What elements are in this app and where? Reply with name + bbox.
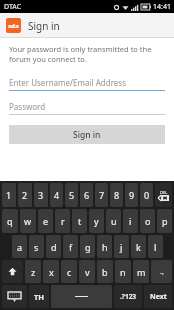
staticText: Password (9, 101, 46, 112)
button[interactable]: 3 (34, 183, 48, 207)
button[interactable]: t (72, 209, 87, 233)
button[interactable]: Password (9, 99, 165, 115)
staticText: 0 (144, 189, 150, 201)
button[interactable]: n (115, 260, 131, 283)
staticText: c (67, 266, 72, 278)
staticText: Enter Username/Email Address (9, 77, 126, 88)
button[interactable]: x (43, 260, 59, 283)
staticText: i (129, 215, 132, 227)
button[interactable]: Next (144, 285, 172, 308)
staticText: TH (34, 292, 45, 302)
staticText: 2 (22, 189, 28, 201)
staticText: a (17, 241, 23, 253)
button[interactable]: 2 (18, 183, 32, 207)
staticText: xda (8, 22, 19, 30)
button[interactable]: XDA logo (6, 18, 60, 33)
button[interactable]: .?123 (114, 285, 142, 308)
staticText: w (24, 215, 32, 227)
staticText: DEL (160, 190, 168, 195)
button[interactable]: Delete (155, 183, 172, 207)
button[interactable]: f (63, 235, 78, 258)
staticText: 4 (54, 189, 60, 201)
button[interactable]: 8 (110, 183, 123, 207)
staticText: 8 (114, 189, 120, 201)
button[interactable]: h (97, 235, 112, 258)
button[interactable]: Space (51, 285, 112, 308)
staticText: d (51, 241, 57, 253)
staticText: Next (150, 292, 167, 302)
button[interactable]: Hide keyboard (2, 285, 27, 308)
button[interactable]: c (61, 260, 77, 283)
staticText: p (162, 215, 168, 227)
staticText: 14:41 (153, 2, 171, 12)
staticText: h (102, 241, 108, 253)
button[interactable]: v (79, 260, 95, 283)
button[interactable]: w (20, 209, 36, 233)
staticText: k (136, 241, 141, 253)
staticText: o (145, 215, 151, 227)
button[interactable]: ., (151, 260, 172, 283)
staticText: ., (160, 267, 164, 277)
button[interactable]: Sign in (9, 125, 165, 144)
staticText: j (120, 241, 123, 253)
button[interactable]: l (148, 235, 163, 258)
button[interactable]: b (97, 260, 113, 283)
button[interactable]: Shift (2, 260, 23, 283)
staticText: z (31, 266, 36, 278)
button[interactable]: TH (29, 285, 49, 308)
button[interactable]: 6 (80, 183, 93, 207)
button[interactable]: 4 (50, 183, 63, 207)
staticText: b (102, 266, 108, 278)
staticText: 6 (84, 189, 90, 201)
button[interactable]: i (123, 209, 138, 233)
staticText: 5 (69, 189, 75, 201)
staticText: 7 (99, 189, 105, 201)
button[interactable]: o (140, 209, 155, 233)
staticText: v (85, 266, 90, 278)
button[interactable]: 0 (140, 183, 153, 207)
staticText: l (154, 241, 157, 253)
staticText: 3 (38, 189, 44, 201)
button[interactable]: 1 (2, 183, 16, 207)
staticText: q (7, 215, 13, 227)
staticText: DTAC (4, 2, 22, 12)
button[interactable]: g (80, 235, 95, 258)
staticText: Sign in (73, 129, 101, 141)
button[interactable]: r (55, 209, 70, 233)
staticText: u (111, 215, 117, 227)
button[interactable]: e (38, 209, 53, 233)
staticText: n (120, 266, 126, 278)
button[interactable]: 5 (65, 183, 78, 207)
button[interactable]: k (131, 235, 146, 258)
staticText: 1 (6, 189, 12, 201)
staticText: .?123 (120, 292, 137, 301)
staticText: y (94, 215, 99, 227)
staticText: 9 (129, 189, 135, 201)
button[interactable]: u (106, 209, 121, 233)
staticText: g (85, 241, 91, 253)
button[interactable]: j (114, 235, 129, 258)
staticText: s (34, 241, 39, 253)
other: XDA logo (6, 18, 21, 33)
button[interactable]: y (89, 209, 104, 233)
button[interactable]: 7 (95, 183, 108, 207)
staticText: m (137, 266, 146, 278)
button[interactable]: z (25, 260, 41, 283)
staticText: r (61, 215, 65, 227)
staticText: Sign in (28, 19, 60, 33)
staticText: e (43, 215, 49, 227)
button[interactable]: a (12, 235, 27, 258)
staticText: t (78, 215, 82, 227)
button[interactable]: Enter Username/Email Address (9, 75, 165, 91)
button[interactable]: m (133, 260, 149, 283)
button[interactable]: d (46, 235, 61, 258)
staticText: Your password is only transmitted to the… (9, 44, 165, 64)
button[interactable]: s (29, 235, 44, 258)
staticText: f (69, 241, 73, 253)
button[interactable]: q (2, 209, 18, 233)
button[interactable]: p (157, 209, 172, 233)
staticText: x (49, 266, 54, 278)
button[interactable]: 9 (125, 183, 138, 207)
